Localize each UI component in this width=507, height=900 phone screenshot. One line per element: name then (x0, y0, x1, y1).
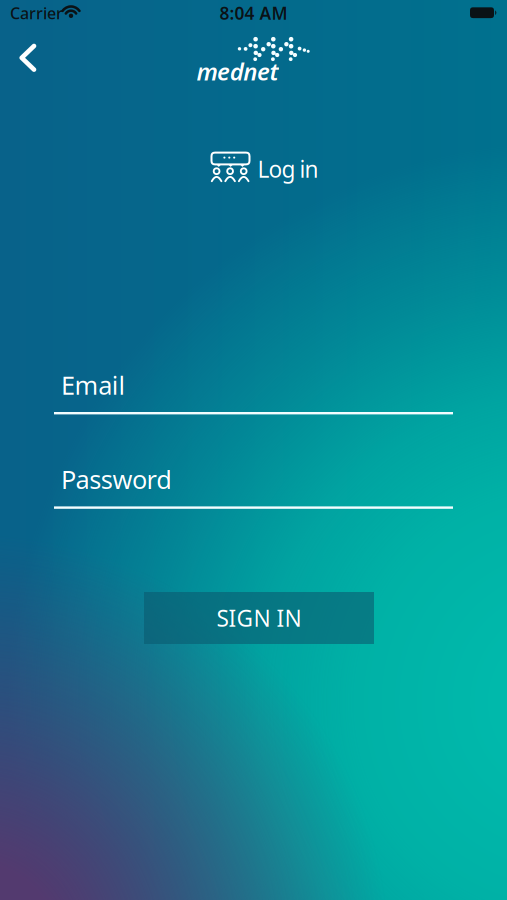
staticText: Carrier (10, 2, 63, 24)
button[interactable]: Email (54, 368, 453, 414)
staticText: mednet (196, 55, 278, 87)
staticText: Log in (257, 154, 318, 184)
button[interactable]: Back (6, 36, 50, 80)
staticText: SIGN IN (216, 603, 301, 633)
staticText: Email (61, 368, 125, 402)
staticText: 8:04 AM (219, 1, 287, 24)
button[interactable]: Password (54, 462, 453, 509)
button[interactable]: SIGN IN (144, 592, 374, 644)
staticText: Password (61, 462, 172, 496)
